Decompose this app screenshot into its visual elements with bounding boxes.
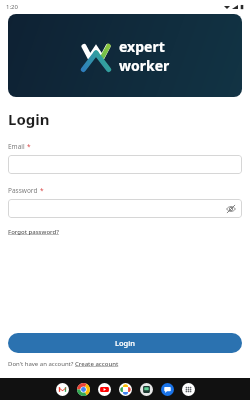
staticText: Login (8, 109, 50, 129)
staticText: * (27, 142, 31, 151)
staticText: Create account (75, 360, 119, 368)
staticText: 1:20 (6, 3, 18, 11)
button[interactable]: Show password (8, 199, 242, 218)
staticText: Forgot password? (8, 228, 59, 236)
button[interactable]: Messages (161, 383, 174, 396)
staticText: Email (8, 142, 25, 151)
button[interactable]: All apps (182, 383, 195, 396)
button[interactable]: Show password (225, 203, 237, 215)
button[interactable]: Forgot password? (8, 228, 59, 236)
button[interactable]: Calculator (140, 383, 153, 396)
staticText: Don't have an account? (8, 360, 75, 368)
staticText: expert (119, 37, 165, 56)
staticText: worker (119, 56, 170, 75)
button[interactable]: Photos (119, 383, 132, 396)
button[interactable]: YouTube (98, 383, 111, 396)
button[interactable] (8, 155, 242, 174)
staticText: Login (115, 338, 135, 348)
button[interactable]: Gmail (56, 383, 69, 396)
staticText: * (40, 186, 44, 195)
button[interactable]: Login (8, 333, 242, 353)
staticText: Password (8, 186, 38, 195)
button[interactable]: Create account (75, 360, 119, 368)
button[interactable]: Chrome (77, 383, 90, 396)
